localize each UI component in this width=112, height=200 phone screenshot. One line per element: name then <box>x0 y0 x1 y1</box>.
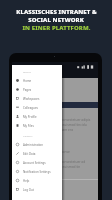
staticText: My Profile <box>23 115 37 119</box>
staticText: ADMIN <box>23 134 33 137</box>
staticText: Edit Data <box>23 152 36 156</box>
button[interactable]: Notification Settings <box>12 167 62 176</box>
staticText: Account Settings <box>23 161 46 165</box>
staticText: Help <box>23 179 30 183</box>
staticText: ut laoreet dolore magna aliquam era <box>18 128 98 132</box>
button[interactable]: Workspaces <box>12 94 62 103</box>
staticText: IN EINER PLATTFORM. <box>22 24 91 32</box>
button[interactable]: Administration <box>12 140 62 149</box>
staticText: MENU <box>23 70 32 73</box>
staticText: Pages <box>23 88 32 92</box>
staticText: Lorem ipsum dolor sit amet, consectetuer… <box>18 118 98 122</box>
staticText: Lorem ipsum dolor sit amet, consectetuer… <box>18 160 98 164</box>
staticText: Lorem ipsum dolor sit amet, conse <box>18 150 98 154</box>
button[interactable]: Pages <box>12 85 62 94</box>
button[interactable]: My Profile <box>12 112 62 121</box>
staticText: Workspaces <box>23 97 40 101</box>
staticText: Home <box>23 79 32 83</box>
staticText: Administration <box>23 143 44 147</box>
button[interactable]: Home <box>12 76 62 85</box>
staticText: My Files <box>23 124 34 128</box>
button[interactable]: Help <box>12 176 62 185</box>
staticText: KLASSISCHES INTRANET & <box>16 8 97 16</box>
staticText: SOCIAL NETWORK <box>28 16 84 24</box>
staticText: Notification Settings <box>23 170 51 174</box>
button[interactable]: My Files <box>12 121 62 130</box>
staticText: Colleagues <box>23 106 38 110</box>
button[interactable]: Log Out <box>12 185 62 194</box>
button[interactable]: Account Settings <box>12 158 62 167</box>
button[interactable]: Edit Data <box>12 149 62 158</box>
staticText: elit, sed diam nonummy nibh euismod tinc… <box>18 123 98 127</box>
staticText: Log Out <box>23 188 34 192</box>
staticText: elit, sed diam nonummy nibh euismod tin <box>18 165 98 169</box>
button[interactable]: Colleagues <box>12 103 62 112</box>
